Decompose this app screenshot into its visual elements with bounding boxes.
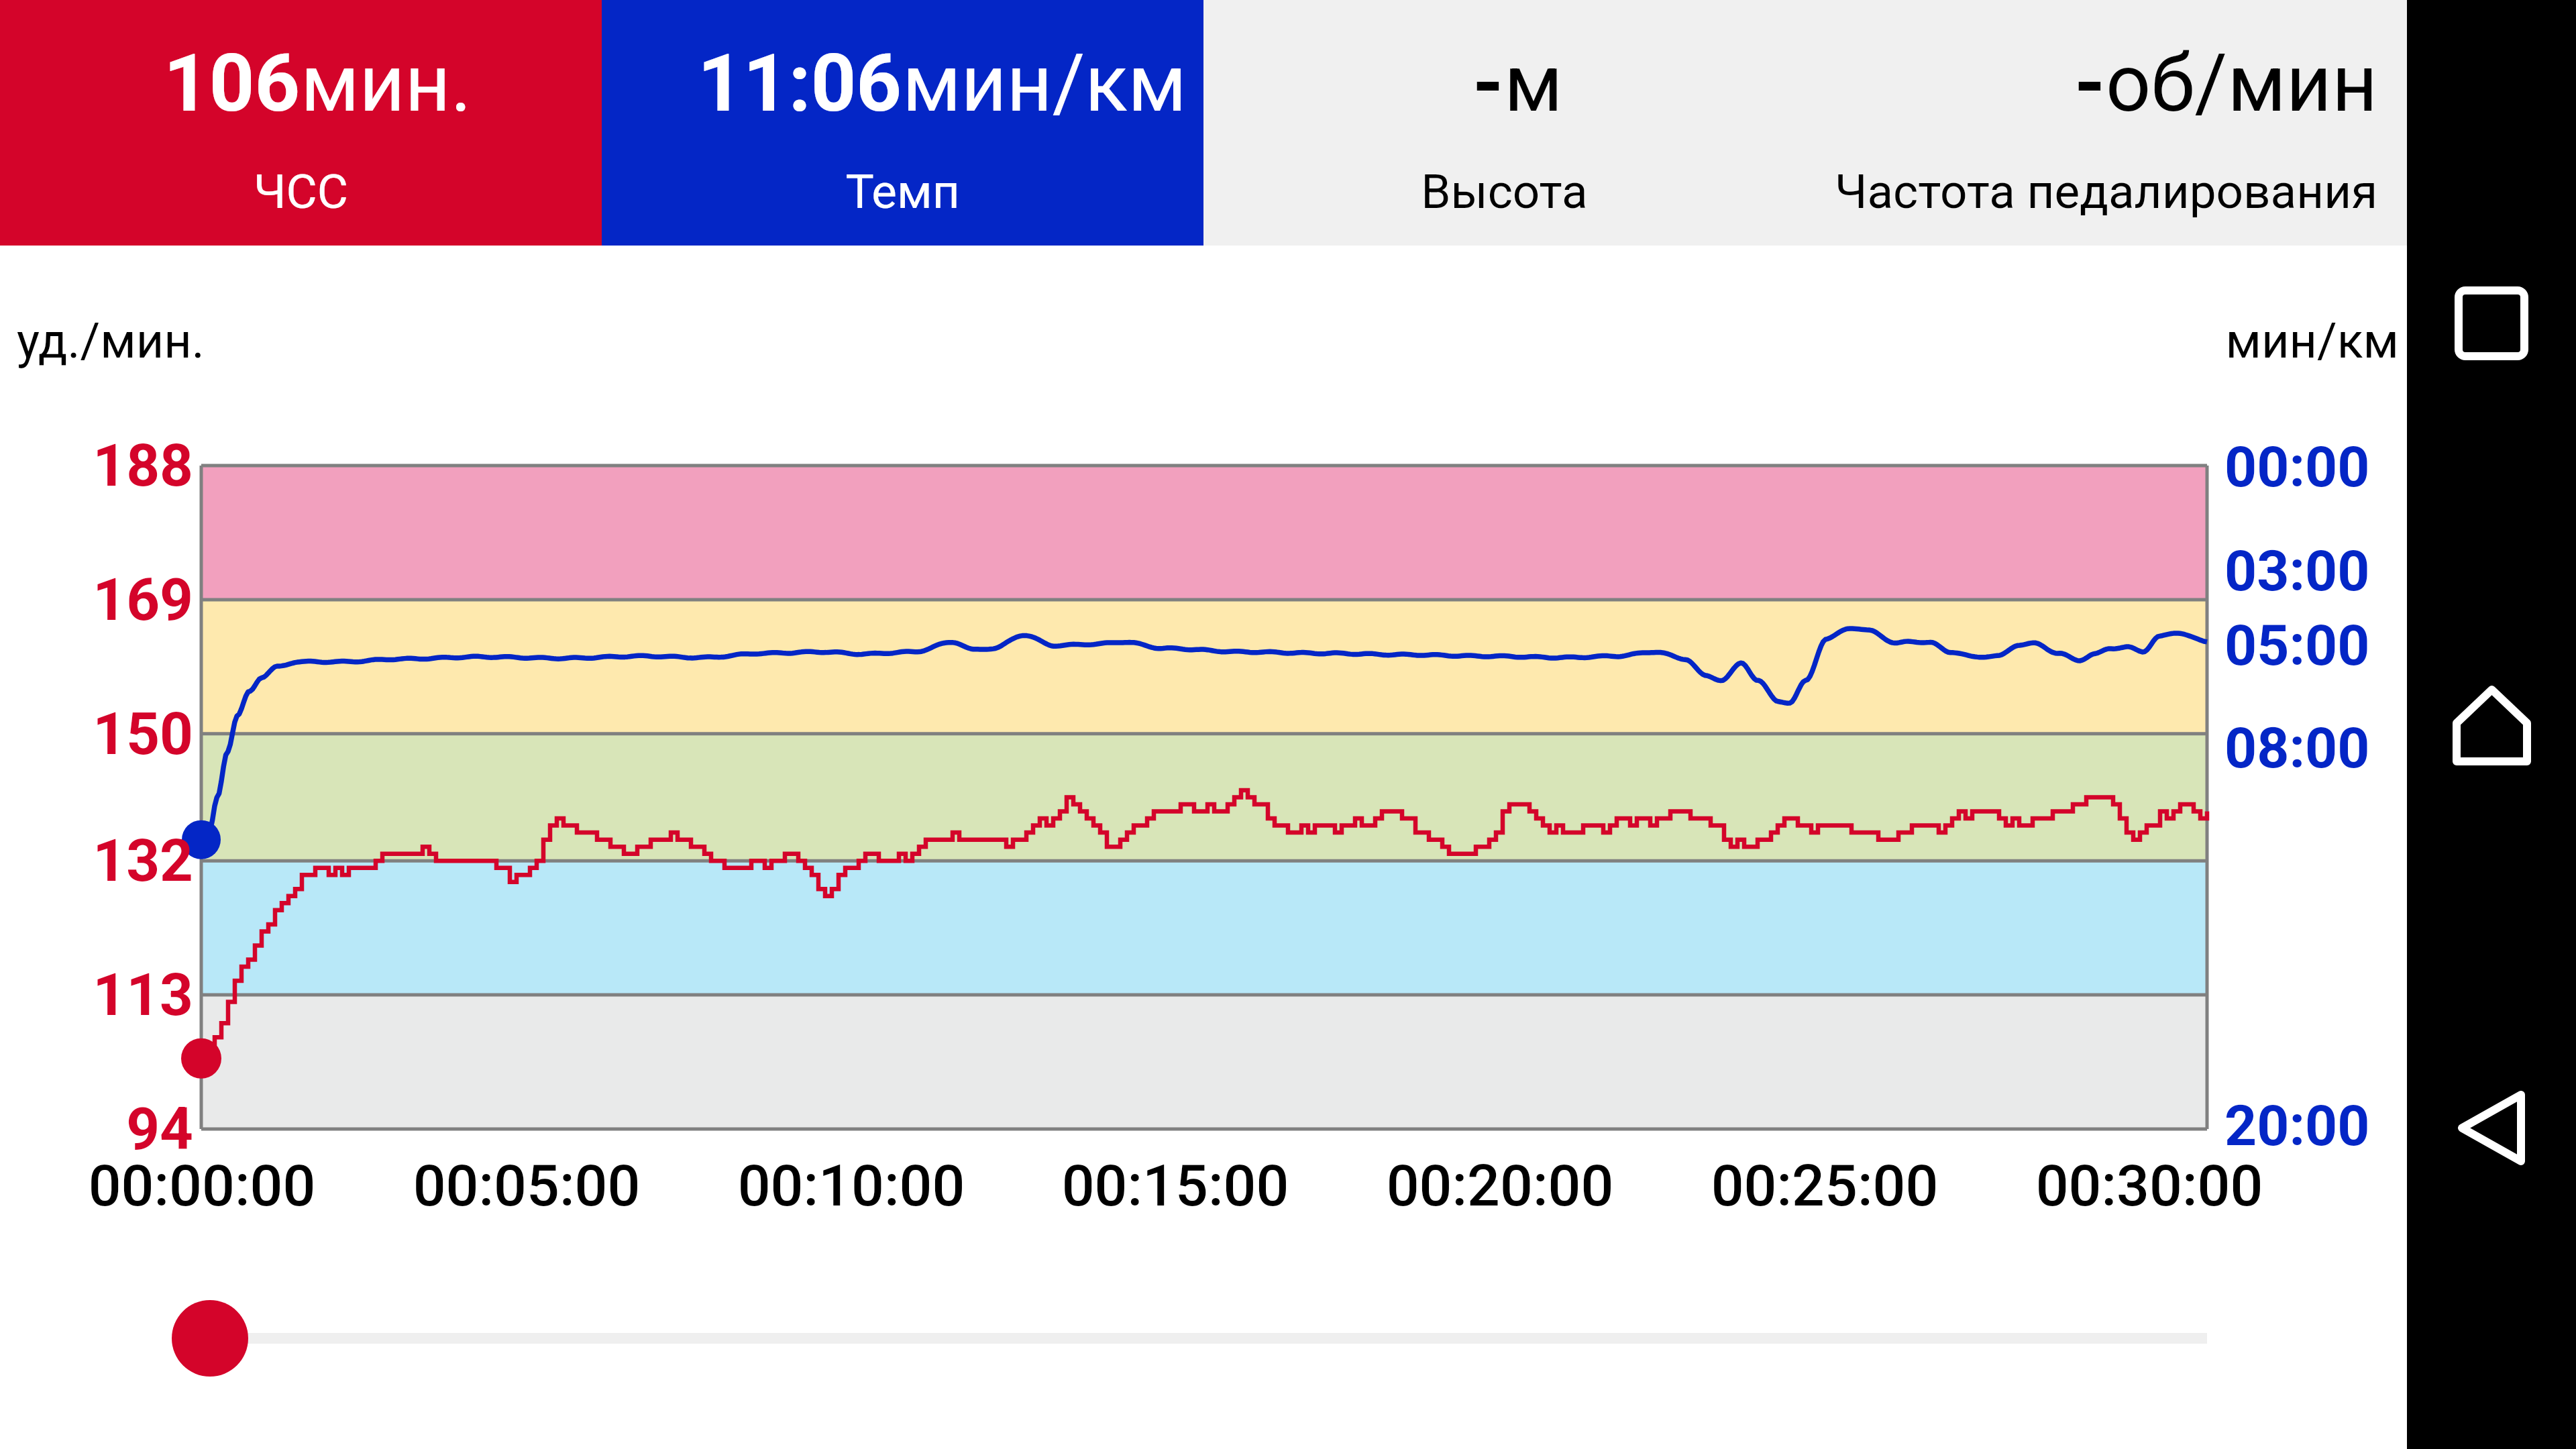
staticText: 113 xyxy=(0,961,193,1029)
staticText: 188 xyxy=(0,431,193,500)
staticText: ЧСС xyxy=(0,164,602,219)
staticText: 106 xyxy=(164,38,301,130)
staticText: 00:05:00 xyxy=(57,1152,996,1220)
staticText: Частота педалирования xyxy=(1805,164,2407,219)
button[interactable]: Recent apps xyxy=(2441,273,2542,374)
staticText: 05:00 xyxy=(2224,612,2576,678)
staticText: 20:00 xyxy=(2224,1093,2576,1159)
button[interactable]: 11:06 xyxy=(602,0,1203,246)
button[interactable]: Back xyxy=(2441,1077,2542,1178)
staticText: 00:00:00 xyxy=(0,1152,672,1220)
staticText: 132 xyxy=(0,826,193,895)
staticText: - xyxy=(1472,38,1504,130)
staticText: м xyxy=(1504,38,1563,130)
button[interactable]: Home xyxy=(2441,675,2542,775)
staticText: уд./мин. xyxy=(17,313,956,369)
staticText: мин/км xyxy=(902,38,1187,130)
button[interactable]: - xyxy=(1203,0,1805,246)
staticText: 03:00 xyxy=(2224,538,2576,604)
staticText: 00:25:00 xyxy=(1355,1152,2294,1220)
staticText: 11:06 xyxy=(698,38,902,130)
staticText: мин/км xyxy=(1460,313,2399,369)
staticText: 00:10:00 xyxy=(382,1152,1321,1220)
button[interactable]: Playback position slider xyxy=(172,1291,2245,1385)
staticText: 00:20:00 xyxy=(1030,1152,1970,1220)
staticText: мин. xyxy=(301,38,472,130)
staticText: 150 xyxy=(0,700,193,768)
staticText: 00:15:00 xyxy=(706,1152,1645,1220)
staticText: 00:00 xyxy=(2224,434,2576,500)
staticText: - xyxy=(2074,38,2106,130)
staticText: Высота xyxy=(1203,164,1805,219)
staticText: Темп xyxy=(602,164,1203,219)
staticText: об/мин xyxy=(2106,38,2377,130)
staticText: 94 xyxy=(0,1095,193,1163)
staticText: 169 xyxy=(0,566,193,634)
button[interactable]: - xyxy=(1805,0,2407,246)
button[interactable]: 106 xyxy=(0,0,602,246)
staticText: 08:00 xyxy=(2224,715,2576,781)
staticText: 00:30:00 xyxy=(1680,1152,2576,1220)
